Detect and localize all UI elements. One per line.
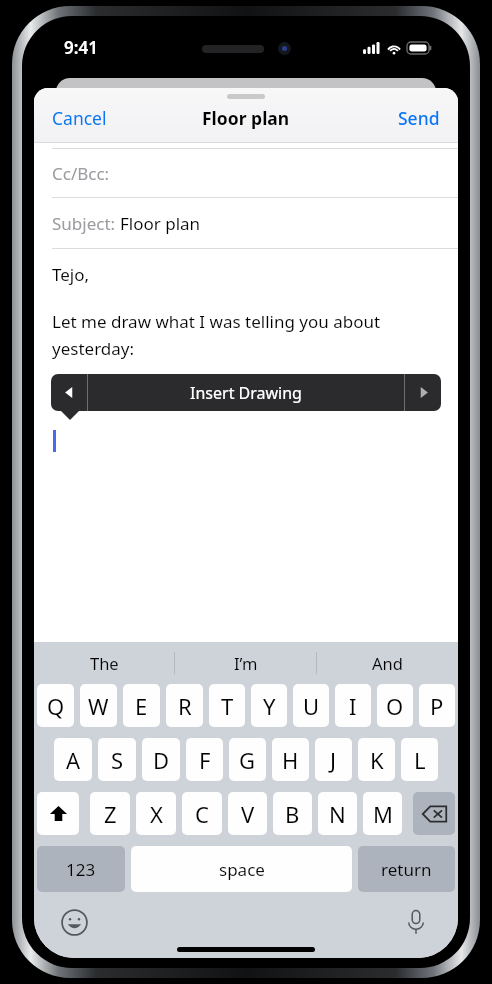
staticText: W (88, 691, 109, 721)
button[interactable]: E (123, 684, 160, 727)
button[interactable]: W (80, 684, 117, 727)
staticText: M (373, 799, 393, 829)
staticText: A (66, 745, 81, 775)
button[interactable]: P (419, 684, 455, 727)
staticText: N (329, 799, 346, 829)
button[interactable]: Dictation (396, 902, 436, 942)
button[interactable]: B (273, 792, 312, 835)
button[interactable]: T (209, 684, 245, 727)
staticText: Subject: (52, 212, 120, 235)
staticText: L (414, 745, 426, 775)
staticText: B (285, 799, 300, 829)
button[interactable]: Subject: (34, 198, 458, 248)
button[interactable]: C (182, 792, 222, 835)
button[interactable]: Y (251, 684, 287, 727)
staticText: 9:41 (64, 36, 98, 59)
button[interactable]: Cancel (34, 95, 121, 135)
button[interactable]: X (136, 792, 176, 835)
staticText: T (221, 691, 234, 721)
staticText: P (430, 691, 444, 721)
staticText: I’m (234, 652, 258, 674)
staticText: U (303, 691, 320, 721)
staticText: O (386, 691, 404, 721)
button[interactable]: M (363, 792, 402, 835)
staticText: And (372, 652, 403, 674)
button[interactable]: And (317, 642, 458, 684)
staticText: Tejo, (52, 263, 90, 286)
button[interactable]: U (293, 684, 329, 727)
button[interactable]: D (142, 738, 180, 781)
button[interactable]: I’m (175, 642, 316, 684)
staticText: Insert Drawing (190, 382, 302, 404)
button[interactable]: Previous (51, 374, 87, 411)
button[interactable]: K (358, 738, 395, 781)
button[interactable]: I (335, 684, 371, 727)
staticText: return (381, 858, 432, 881)
button[interactable]: Backspace (413, 792, 455, 835)
button[interactable]: Insert Drawing (88, 374, 404, 411)
staticText: J (330, 745, 337, 775)
button[interactable]: Send (384, 95, 458, 135)
staticText: 123 (66, 858, 96, 881)
staticText: D (153, 745, 170, 775)
button[interactable]: R (166, 684, 203, 727)
button[interactable]: L (401, 738, 438, 781)
staticText: X (150, 799, 163, 829)
button[interactable]: Z (90, 792, 130, 835)
button[interactable]: S (98, 738, 136, 781)
button[interactable]: O (377, 684, 413, 727)
button[interactable]: N (318, 792, 357, 835)
button[interactable]: return (358, 846, 455, 892)
staticText: F (199, 745, 211, 775)
button[interactable]: F (186, 738, 223, 781)
staticText: V (241, 799, 255, 829)
staticText: C (195, 799, 209, 829)
button[interactable]: Emoji keyboard (54, 902, 94, 942)
button[interactable]: Cc/Bcc: (34, 149, 458, 197)
staticText: Let me draw what I was telling you about… (52, 310, 424, 360)
staticText: Send (398, 106, 440, 130)
staticText: G (239, 745, 256, 775)
staticText: Cancel (52, 106, 107, 130)
staticText: Floor plan (202, 106, 290, 130)
button[interactable]: The (34, 642, 174, 684)
button[interactable]: space (131, 846, 352, 892)
button[interactable]: J (315, 738, 352, 781)
staticText: space (219, 858, 265, 881)
button[interactable]: A (54, 738, 92, 781)
staticText: E (135, 691, 148, 721)
button[interactable]: Shift (37, 792, 79, 835)
button[interactable]: Q (37, 684, 74, 727)
button[interactable]: G (229, 738, 266, 781)
staticText: R (178, 691, 192, 721)
staticText: K (370, 745, 384, 775)
staticText: Y (263, 691, 276, 721)
staticText: Q (47, 691, 65, 721)
button[interactable]: Next (405, 374, 441, 411)
staticText: Floor plan (120, 212, 201, 235)
button[interactable]: H (272, 738, 309, 781)
staticText: S (111, 745, 124, 775)
staticText: I (349, 691, 357, 721)
staticText: The (90, 652, 119, 674)
staticText: Z (104, 799, 117, 829)
staticText: H (282, 745, 299, 775)
button[interactable]: V (228, 792, 267, 835)
staticText: Cc/Bcc: (52, 162, 110, 185)
button[interactable]: 123 (37, 846, 125, 892)
